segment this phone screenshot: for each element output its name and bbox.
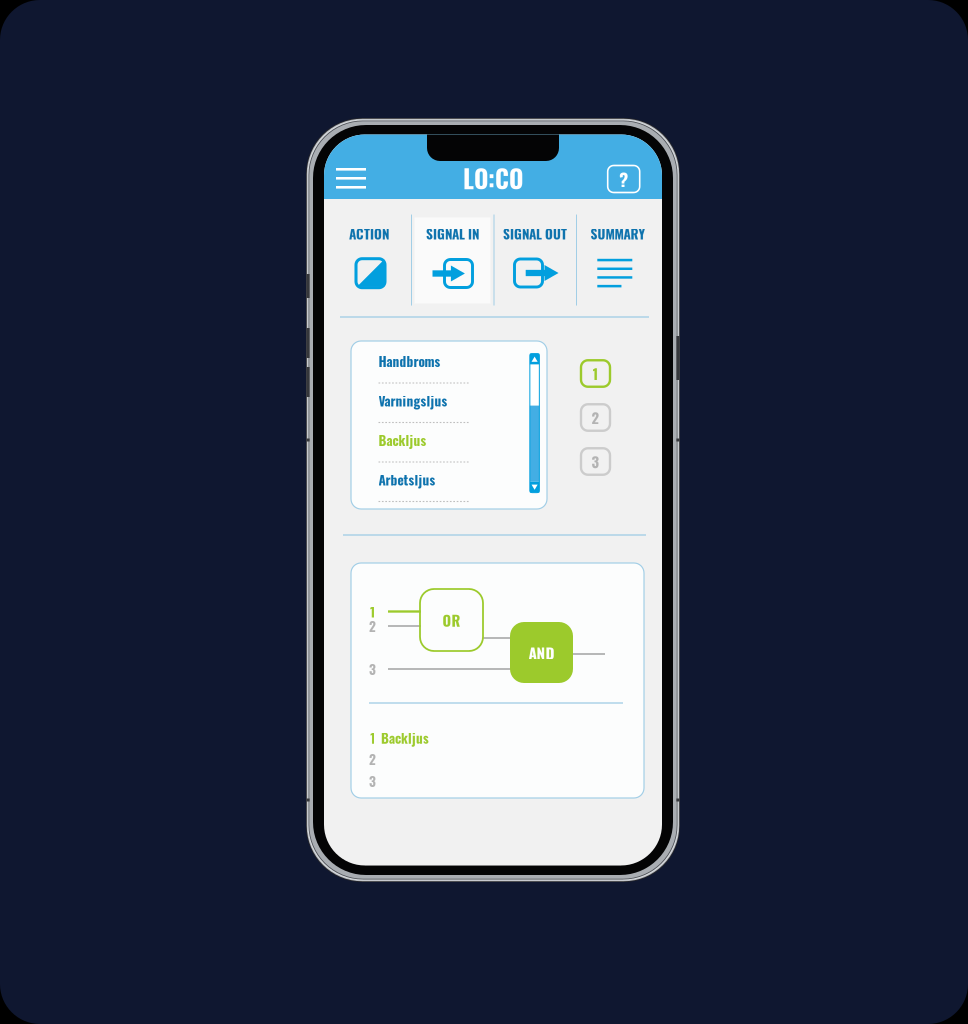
staticText: OR xyxy=(442,609,460,631)
staticText: Arbetsljus xyxy=(378,470,435,489)
staticText: Backljus xyxy=(381,728,429,748)
button[interactable]: SUMMARY xyxy=(577,214,659,305)
staticText: 2 xyxy=(369,749,376,769)
button[interactable]: Backljus xyxy=(378,431,471,470)
button[interactable]: Slot 2 xyxy=(581,404,610,431)
staticText: SUMMARY xyxy=(590,224,645,243)
button[interactable]: ACTION xyxy=(328,214,410,305)
staticText: 3 xyxy=(369,771,376,791)
button[interactable]: Help xyxy=(608,165,640,192)
staticText: 2 xyxy=(591,407,599,428)
staticText: Backljus xyxy=(378,430,426,450)
button[interactable]: Slot 1 xyxy=(581,360,610,387)
staticText: 2 xyxy=(369,616,376,636)
staticText: Varningsljus xyxy=(378,391,447,410)
staticText: 1 xyxy=(592,363,598,384)
staticText: AND xyxy=(528,641,554,664)
staticText: LO:CO xyxy=(463,160,523,196)
button[interactable]: SIGNAL IN xyxy=(411,214,493,305)
button[interactable]: Arbetsljus xyxy=(378,470,471,510)
button[interactable]: Handbroms xyxy=(378,352,471,391)
button[interactable]: Menu xyxy=(328,159,374,197)
staticText: ? xyxy=(619,165,628,193)
staticText: SIGNAL OUT xyxy=(503,224,567,243)
button[interactable]: Slot 3 xyxy=(581,448,610,475)
button[interactable]: Varningsljus xyxy=(378,391,471,431)
staticText: 1 xyxy=(370,602,375,621)
staticText: ACTION xyxy=(349,224,389,243)
staticText: SIGNAL IN xyxy=(426,224,479,243)
staticText: 3 xyxy=(591,451,599,472)
staticText: 1 xyxy=(370,728,375,748)
staticText: 3 xyxy=(369,659,376,679)
staticText: Handbroms xyxy=(378,351,440,371)
button[interactable]: SIGNAL OUT xyxy=(494,214,576,305)
